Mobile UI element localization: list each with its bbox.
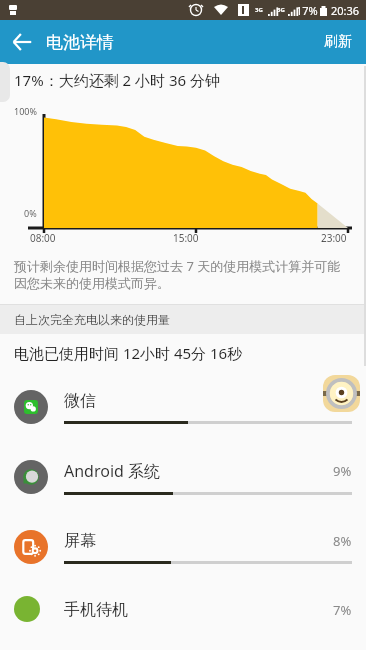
staticText: 100% (14, 105, 37, 117)
button[interactable]: 微信 (0, 372, 366, 442)
button[interactable]: Back (0, 20, 44, 64)
staticText: 10% (326, 392, 352, 410)
staticText: 电池详情 (46, 32, 114, 53)
staticText: 7% (333, 601, 352, 619)
staticText: 预计剩余使用时间根据您过去 7 天的使用模式计算并可能因您未来的使用模式而异。 (14, 257, 348, 292)
staticText: 8% (333, 532, 352, 550)
staticText: 0% (24, 207, 37, 219)
staticText: 刷新 (324, 33, 352, 51)
staticText: 08:00 (30, 231, 56, 245)
button[interactable]: Floating app shortcut (319, 371, 364, 416)
staticText: 17%：大约还剩 2 小时 36 分钟 (14, 70, 220, 90)
button[interactable]: Android 系统 (0, 442, 366, 512)
staticText: 20:36 (331, 3, 360, 18)
staticText: Android 系统 (64, 460, 333, 482)
staticText: 15:00 (173, 231, 199, 245)
staticText: 23:00 (321, 231, 347, 245)
staticText: 17% (296, 3, 318, 18)
staticText: 微信 (64, 391, 326, 411)
staticText: 3G (255, 6, 263, 14)
button[interactable]: 手机待机 (0, 582, 366, 622)
staticText: 3G (277, 6, 285, 14)
button[interactable]: 屏幕 (0, 512, 366, 582)
staticText: 自上次完全充电以来的使用量 (14, 312, 170, 327)
staticText: 手机待机 (64, 600, 333, 620)
staticText: 9% (333, 462, 352, 480)
staticText: 屏幕 (64, 531, 333, 551)
button[interactable]: 刷新 (310, 23, 366, 61)
staticText: 电池已使用时间 12小时 45分 16秒 (14, 343, 243, 363)
